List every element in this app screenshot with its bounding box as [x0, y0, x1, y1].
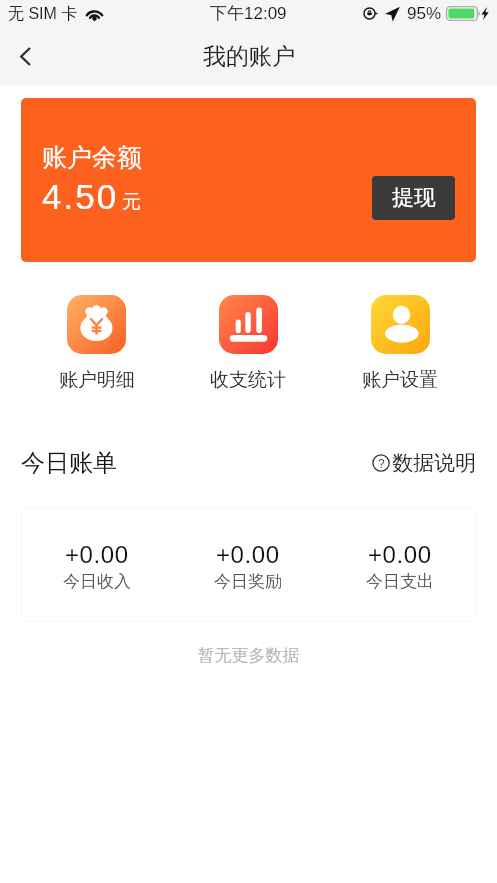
- staticText: 数据说明: [392, 450, 476, 476]
- staticText: 今日支出: [366, 571, 434, 592]
- staticText: 我的账户: [203, 42, 295, 71]
- staticText: 4.50: [42, 177, 119, 216]
- button[interactable]: 账户明细: [21, 295, 172, 392]
- staticText: 下午12:09: [210, 3, 287, 24]
- staticText: 收支统计: [210, 368, 286, 392]
- staticText: +0.00: [65, 541, 129, 568]
- staticText: +0.00: [368, 541, 432, 568]
- staticText: 95%: [407, 4, 442, 23]
- staticText: +0.00: [216, 541, 280, 568]
- staticText: 无 SIM 卡: [8, 4, 78, 24]
- staticText: ?: [378, 457, 385, 470]
- staticText: 账户设置: [362, 368, 438, 392]
- staticText: 今日收入: [63, 571, 131, 592]
- staticText: 账户余额: [42, 142, 142, 173]
- button[interactable]: 返回: [0, 34, 50, 79]
- staticText: 提现: [392, 184, 436, 212]
- button[interactable]: ?: [372, 450, 476, 476]
- button[interactable]: +0.00: [324, 538, 476, 592]
- staticText: 暂无更多数据: [0, 645, 497, 666]
- staticText: 今日奖励: [214, 571, 282, 592]
- staticText: 账户明细: [59, 368, 135, 392]
- staticText: 元: [122, 190, 141, 214]
- button[interactable]: +0.00: [172, 538, 324, 592]
- button[interactable]: 收支统计: [172, 295, 324, 392]
- button[interactable]: +0.00: [21, 538, 172, 592]
- button[interactable]: 账户设置: [324, 295, 476, 392]
- staticText: 今日账单: [21, 448, 117, 478]
- button[interactable]: 账户余额: [21, 98, 476, 262]
- button[interactable]: 提现: [372, 176, 455, 220]
